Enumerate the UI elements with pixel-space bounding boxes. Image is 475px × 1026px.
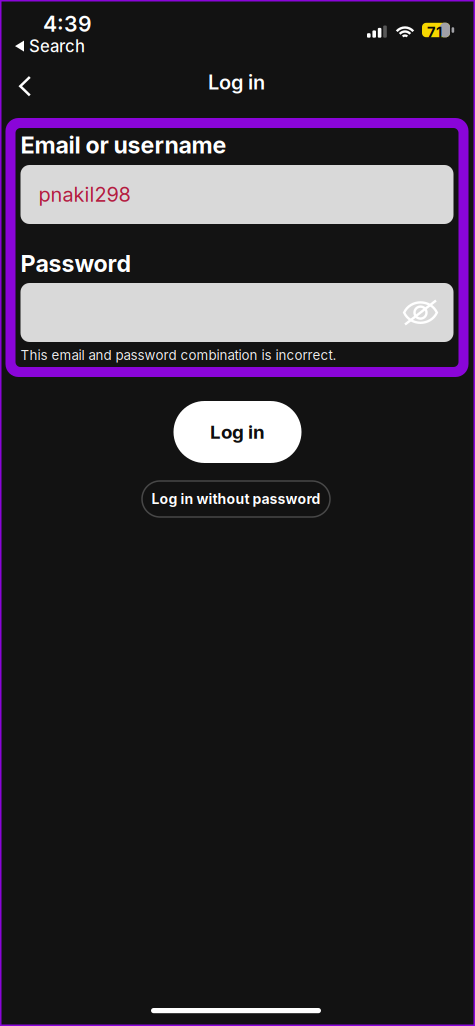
- button[interactable]: Back: [8, 68, 42, 105]
- button[interactable]: Log in: [173, 401, 301, 463]
- staticText: 4:39: [43, 11, 92, 37]
- button[interactable]: pnakil298: [20, 165, 453, 224]
- button[interactable]: Search: [12, 32, 88, 60]
- staticText: Password: [20, 249, 131, 278]
- button[interactable]: [20, 283, 453, 342]
- button[interactable]: Log in without password: [142, 481, 330, 517]
- staticText: Log in: [208, 70, 265, 94]
- staticText: pnakil298: [38, 182, 130, 207]
- staticText: Email or username: [20, 131, 226, 159]
- staticText: Log in: [210, 421, 265, 443]
- staticText: This email and password combination is i…: [20, 347, 336, 363]
- staticText: 71: [427, 23, 442, 41]
- staticText: Search: [29, 36, 85, 56]
- staticText: Log in without password: [151, 490, 320, 507]
